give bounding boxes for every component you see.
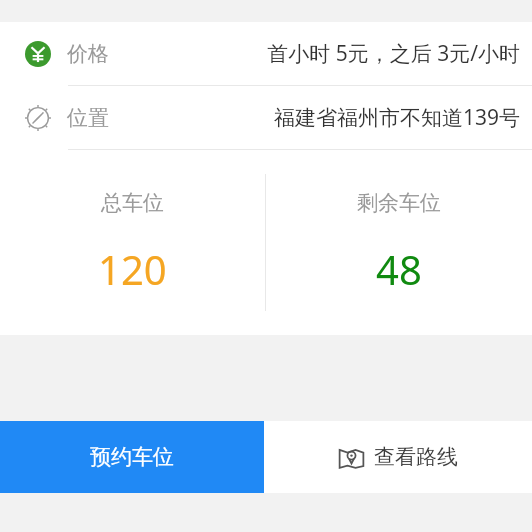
button[interactable]: Location [0,86,532,149]
staticText: 价格 [67,41,109,67]
staticText: 查看路线 [374,444,458,470]
staticText: 120 [98,242,167,296]
staticText: 预约车位 [90,444,174,470]
other: Route [338,444,365,471]
button[interactable]: Price [0,22,532,85]
staticText: 48 [376,242,422,296]
staticText: 福建省福州市不知道139号 [273,103,520,132]
staticText: 位置 [67,105,109,131]
other: Location [25,105,51,131]
other: Price [25,41,51,67]
staticText: 剩余车位 [357,190,441,216]
button[interactable]: Route [264,421,532,493]
staticText: 总车位 [101,190,164,216]
staticText: 首小时 5元，之后 3元/小时 [267,39,520,68]
button[interactable]: 预约车位 [0,421,264,493]
